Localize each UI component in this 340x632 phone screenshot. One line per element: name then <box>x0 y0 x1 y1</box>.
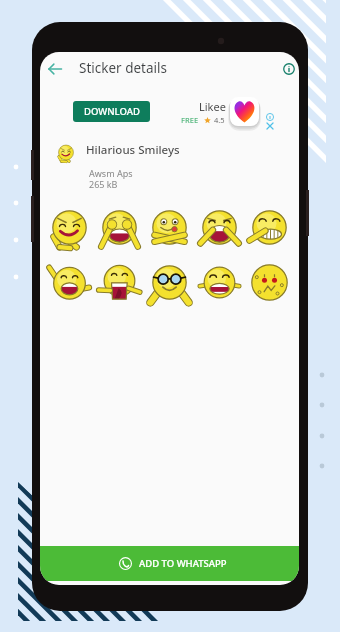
button[interactable]: Sticker <box>144 200 194 255</box>
staticText: 4.5 <box>214 115 225 125</box>
staticText: FREE <box>181 115 199 125</box>
button[interactable]: Likee ad <box>229 96 260 127</box>
button[interactable]: Sticker <box>244 255 294 310</box>
button[interactable]: Close ad <box>264 120 275 131</box>
button[interactable]: Sticker <box>244 200 294 255</box>
button[interactable]: Ad info <box>264 111 275 122</box>
staticText: Awsm Aps <box>89 167 133 179</box>
button[interactable]: Sticker <box>45 255 94 310</box>
button[interactable]: ADD TO WHATSAPP <box>40 546 299 581</box>
button[interactable]: Info <box>277 57 299 80</box>
button[interactable]: Back <box>43 57 66 80</box>
button[interactable]: DOWNLOAD <box>73 101 150 122</box>
button[interactable]: Sticker <box>45 200 94 255</box>
staticText: DOWNLOAD <box>84 105 140 118</box>
button[interactable]: Sticker <box>94 255 144 310</box>
button[interactable]: Sticker <box>144 255 194 310</box>
staticText: Likee <box>199 99 226 114</box>
staticText: Sticker details <box>79 59 167 77</box>
button[interactable]: Sticker <box>194 200 244 255</box>
staticText: ADD TO WHATSAPP <box>139 557 227 570</box>
button[interactable]: Sticker <box>94 200 144 255</box>
staticText: Hilarious Smileys <box>86 142 180 158</box>
button[interactable]: Sticker <box>194 255 244 310</box>
staticText: 265 kB <box>89 178 118 190</box>
